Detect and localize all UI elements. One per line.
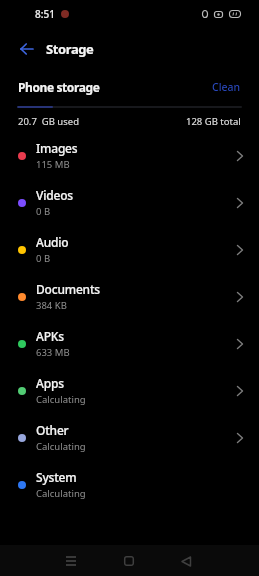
button[interactable]: Images (0, 132, 259, 179)
staticText: Calculating (36, 487, 86, 500)
staticText: APKs (36, 328, 64, 344)
staticText: 115 MB (36, 158, 70, 171)
staticText: 0 B (36, 252, 51, 265)
button[interactable]: System (0, 461, 259, 508)
button[interactable] (16, 38, 38, 60)
staticText: Apps (36, 375, 64, 391)
staticText: 384 KB (36, 299, 67, 312)
button[interactable] (60, 550, 82, 572)
staticText: Videos (36, 187, 73, 203)
button[interactable]: Videos (0, 179, 259, 226)
button[interactable]: Other (0, 414, 259, 461)
staticText: Audio (36, 234, 69, 250)
button[interactable]: Documents (0, 273, 259, 320)
button[interactable]: Audio (0, 226, 259, 273)
staticText: Storage (46, 40, 94, 58)
staticText: Calculating (36, 393, 86, 406)
staticText: 633 MB (36, 346, 70, 359)
staticText: System (36, 469, 77, 485)
staticText: Calculating (36, 440, 86, 453)
button[interactable]: Apps (0, 367, 259, 414)
staticText: 20.7 GB used (18, 115, 79, 127)
button[interactable]: Clean (212, 80, 241, 94)
staticText: Other (36, 422, 69, 438)
staticText: Clean (212, 80, 241, 94)
staticText: 128 GB total (186, 115, 241, 127)
staticText: 8:51 (35, 7, 55, 21)
button[interactable] (118, 550, 140, 572)
staticText: Images (36, 140, 78, 156)
staticText: Phone storage (18, 79, 100, 95)
staticText: Documents (36, 281, 100, 297)
staticText: 0 B (36, 205, 51, 218)
button[interactable] (175, 550, 197, 572)
button[interactable]: APKs (0, 320, 259, 367)
